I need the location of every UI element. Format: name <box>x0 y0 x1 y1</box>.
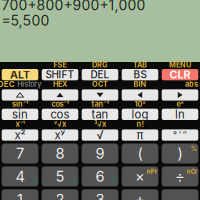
button[interactable]: √ <box>80 129 120 141</box>
staticText: =5,500 <box>1 12 49 29</box>
button[interactable]: Move right <box>160 89 200 101</box>
staticText: DEC <box>0 79 15 89</box>
staticText: 4 <box>15 167 24 185</box>
button[interactable]: 2 <box>40 189 80 200</box>
staticText: tan <box>91 107 108 121</box>
staticText: F <box>113 178 117 185</box>
staticText: eˣ <box>176 100 183 108</box>
staticText: nPr <box>147 168 157 175</box>
button[interactable]: Move down <box>80 89 120 101</box>
button[interactable]: x² <box>0 129 40 141</box>
staticText: abs <box>185 80 198 89</box>
button[interactable]: 3 <box>80 189 120 200</box>
staticText: FSE <box>53 60 66 69</box>
staticText: DEL <box>90 69 109 81</box>
staticText: 10ˣ <box>134 100 145 108</box>
button[interactable]: Move up <box>40 89 80 101</box>
button[interactable]: 9 <box>80 143 120 163</box>
staticText: 1 <box>17 190 23 200</box>
staticText: 8 <box>55 145 64 162</box>
staticText: ALT <box>10 68 30 81</box>
staticText: SHIFT <box>45 69 74 81</box>
staticText: ³√x <box>94 120 106 129</box>
staticText: π <box>136 128 143 142</box>
staticText: ) <box>177 145 182 162</box>
button[interactable]: Move left <box>120 89 160 101</box>
staticText: ° ′ ″ <box>173 130 187 140</box>
button[interactable]: ln <box>160 109 200 120</box>
staticText: x⁻¹ <box>15 120 24 129</box>
button[interactable]: × <box>120 166 160 186</box>
button[interactable]: 1 <box>0 189 40 200</box>
button[interactable]: 4 <box>0 166 40 186</box>
staticText: sin <box>12 107 28 121</box>
button[interactable]: + <box>120 189 160 200</box>
button[interactable]: ° ′ ″ <box>160 129 200 141</box>
staticText: cos⁻¹ <box>51 100 68 108</box>
staticText: 2 <box>55 190 64 200</box>
staticText: sin⁻¹ <box>12 100 28 108</box>
button[interactable]: 7 <box>0 143 40 163</box>
button[interactable]: log <box>120 109 160 120</box>
button[interactable]: − <box>160 189 200 200</box>
button[interactable]: cos <box>40 109 80 120</box>
staticText: OCT <box>92 80 108 89</box>
staticText: MENU <box>169 60 191 69</box>
button[interactable]: ALT <box>0 69 40 80</box>
staticText: 700+800+900+1,000 <box>1 0 145 13</box>
staticText: n! <box>136 120 143 129</box>
staticText: % <box>191 145 197 152</box>
button[interactable]: ( <box>120 143 160 163</box>
button[interactable]: CLR <box>160 69 200 80</box>
button[interactable]: sin <box>0 109 40 120</box>
button[interactable]: ÷ <box>160 166 200 186</box>
staticText: xʸ <box>54 128 65 142</box>
staticText: + <box>135 190 145 200</box>
staticText: BIN <box>133 80 146 89</box>
button[interactable]: SHIFT <box>40 69 80 80</box>
button[interactable]: 6 <box>80 166 120 186</box>
staticText: ʸ√x <box>54 120 66 129</box>
button[interactable]: π <box>120 129 160 141</box>
staticText: 9 <box>95 145 104 162</box>
staticText: nCr <box>187 168 197 175</box>
staticText: TAB <box>133 60 147 69</box>
button[interactable]: 5 <box>40 166 80 186</box>
staticText: 3 <box>95 190 104 200</box>
button[interactable]: BS <box>120 69 160 80</box>
button[interactable]: Scroll up <box>0 89 40 101</box>
staticText: ln <box>175 107 185 121</box>
staticText: × <box>135 167 145 185</box>
staticText: x² <box>14 128 25 142</box>
staticText: History <box>17 80 41 89</box>
button[interactable]: tan <box>80 109 120 120</box>
staticText: DRG <box>92 60 108 69</box>
staticText: cos <box>50 107 69 121</box>
staticText: √ <box>96 128 103 142</box>
staticText: E <box>73 178 77 185</box>
button[interactable]: xʸ <box>40 129 80 141</box>
staticText: HEX <box>53 80 67 89</box>
staticText: CLR <box>169 68 190 81</box>
staticText: 6 <box>95 167 104 185</box>
button[interactable]: DEL <box>80 69 120 80</box>
staticText: 5 <box>55 167 64 185</box>
staticText: BS <box>133 69 146 81</box>
button[interactable]: ) <box>160 143 200 163</box>
staticText: 7 <box>16 145 24 162</box>
staticText: log <box>131 107 148 121</box>
staticText: tan⁻¹ <box>91 100 108 108</box>
staticText: ÷ <box>175 167 185 185</box>
staticText: ( <box>137 145 142 162</box>
staticText: D <box>33 178 37 185</box>
button[interactable]: 8 <box>40 143 80 163</box>
